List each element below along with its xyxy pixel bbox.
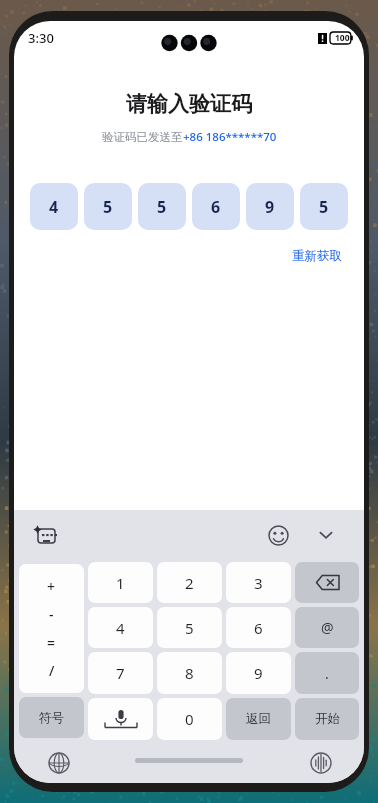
staticText: 9 (254, 663, 263, 683)
button[interactable]: Voice (308, 750, 334, 776)
staticText: 9 (265, 196, 275, 218)
button[interactable]: 5 (300, 183, 348, 230)
staticText: . (325, 664, 329, 683)
button[interactable]: 5 (138, 183, 186, 230)
button[interactable]: Voice input (88, 698, 153, 740)
button[interactable]: 5 (157, 607, 222, 648)
button[interactable]: 6 (192, 183, 240, 230)
staticText: = (47, 633, 56, 652)
button[interactable]: Emoji (262, 519, 294, 551)
button[interactable]: 9 (226, 652, 291, 694)
button[interactable]: 0 (157, 698, 222, 740)
staticText: 5 (157, 196, 167, 218)
button[interactable]: 开始 (295, 698, 359, 740)
button[interactable]: 4 (30, 183, 78, 230)
staticText: 6 (211, 196, 221, 218)
staticText: 1 (116, 573, 125, 593)
button[interactable]: 7 (88, 652, 153, 694)
button[interactable]: @ (295, 607, 359, 648)
button[interactable]: 8 (157, 652, 222, 694)
staticText: 2 (185, 573, 194, 593)
staticText: 5 (185, 618, 194, 638)
button[interactable]: 4 (88, 607, 153, 648)
staticText: 请输入验证码 (14, 91, 364, 117)
button[interactable]: 3 (226, 562, 291, 603)
staticText: 5 (103, 196, 113, 218)
button[interactable]: 重新获取 (288, 244, 346, 268)
button[interactable]: Hide keyboard (310, 519, 342, 551)
staticText: 开始 (315, 711, 340, 727)
staticText: 3 (254, 573, 263, 593)
button[interactable]: 2 (157, 562, 222, 603)
button[interactable]: 6 (226, 607, 291, 648)
staticText: 验证码已发送至 (102, 130, 183, 144)
button[interactable]: 5 (84, 183, 132, 230)
staticText: - (49, 605, 54, 624)
staticText: 4 (49, 196, 59, 218)
staticText: 重新获取 (292, 248, 342, 264)
staticText: +86 186******70 (183, 129, 277, 145)
staticText: 4 (116, 618, 125, 638)
button[interactable]: Change language (46, 750, 72, 776)
staticText: + (47, 577, 56, 596)
button[interactable]: 1 (88, 562, 153, 603)
staticText: / (49, 661, 55, 680)
staticText: @ (321, 618, 334, 637)
staticText: 符号 (39, 710, 64, 726)
button[interactable]: . (295, 652, 359, 694)
staticText: 7 (116, 663, 125, 683)
staticText: 5 (319, 196, 329, 218)
button[interactable]: 符号 (19, 697, 84, 738)
staticText: 3:30 (28, 29, 54, 47)
button[interactable]: Backspace (295, 562, 359, 603)
button[interactable]: + (19, 564, 84, 693)
staticText: 100 (335, 32, 350, 44)
staticText: 8 (185, 663, 194, 683)
button[interactable]: 9 (246, 183, 294, 230)
staticText: 6 (254, 618, 263, 638)
staticText: 返回 (246, 711, 271, 727)
button[interactable]: 返回 (226, 698, 291, 740)
button[interactable]: AI keyboard (28, 518, 62, 552)
staticText: 0 (185, 709, 194, 729)
